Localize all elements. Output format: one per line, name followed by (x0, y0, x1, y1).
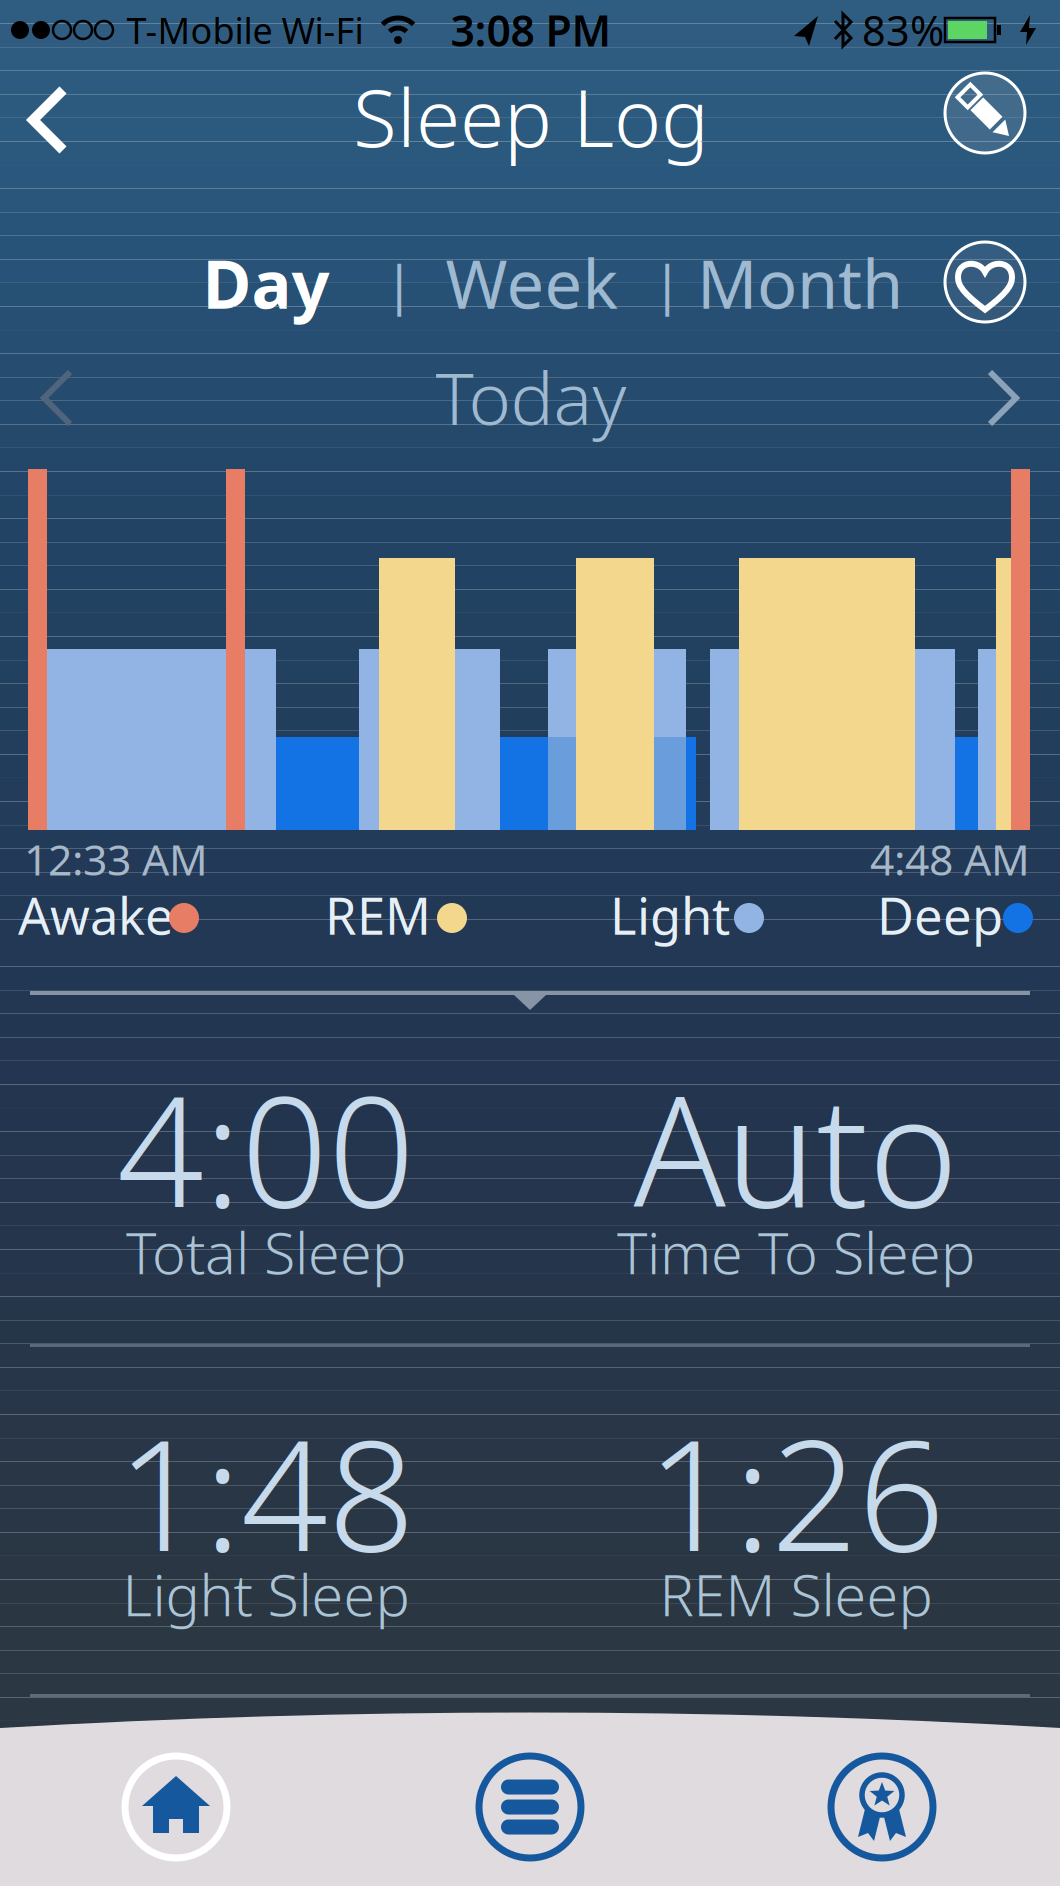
button[interactable]: Home (122, 1753, 230, 1861)
button[interactable]: Favorites (943, 240, 1027, 324)
button[interactable]: Previous day (27, 368, 87, 428)
staticText: Week (445, 239, 618, 327)
button[interactable]: Day (202, 239, 329, 327)
staticText: Time To Sleep (617, 1214, 975, 1290)
staticText: 4:00 (117, 1047, 415, 1249)
staticText: Auto (633, 1047, 958, 1249)
button[interactable]: Back (8, 75, 88, 165)
staticText: Light (610, 881, 730, 949)
staticText: Day (202, 239, 329, 327)
staticText: REM Sleep (659, 1556, 932, 1632)
button[interactable]: Sleep log list (476, 1753, 584, 1861)
staticText: REM (325, 881, 431, 949)
staticText: Deep (877, 881, 1003, 949)
staticText: Today (435, 349, 626, 445)
staticText: Awake (18, 881, 174, 949)
staticText: Light Sleep (122, 1556, 409, 1632)
staticText: 12:33 AM (24, 831, 208, 887)
staticText: Month (697, 239, 903, 327)
button[interactable]: Achievements (828, 1753, 936, 1861)
staticText: 83% (862, 3, 944, 57)
staticText: 1:48 (117, 1391, 415, 1593)
button[interactable]: Edit (943, 71, 1027, 155)
staticText: Sleep Log (353, 63, 709, 169)
staticText: Total Sleep (126, 1214, 406, 1290)
button[interactable]: Next day (973, 368, 1033, 428)
staticText: 4:48 AM (870, 831, 1030, 887)
staticText: 3:08 PM (450, 2, 611, 58)
button[interactable]: Month (697, 239, 903, 327)
staticText: T-Mobile Wi-Fi (126, 6, 363, 54)
button[interactable]: Week (445, 239, 618, 327)
staticText: | (384, 248, 413, 318)
staticText: 1:26 (647, 1391, 945, 1593)
staticText: | (652, 248, 681, 318)
